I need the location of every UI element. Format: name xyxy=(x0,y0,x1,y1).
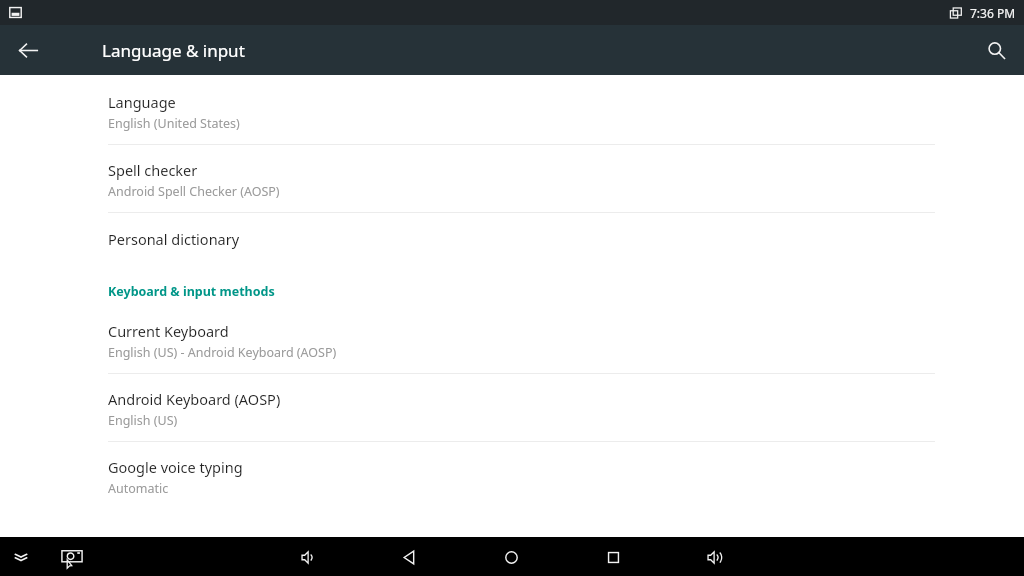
staticText: Language xyxy=(108,92,176,112)
button[interactable]: Volume up xyxy=(697,540,731,574)
button[interactable]: Screenshot xyxy=(56,541,88,573)
staticText: English (US) xyxy=(108,412,178,429)
staticText: Spell checker xyxy=(108,160,198,180)
button[interactable]: Language xyxy=(0,75,1024,144)
staticText: Android Spell Checker (AOSP) xyxy=(108,183,280,200)
staticText: Keyboard & input methods xyxy=(108,283,275,300)
button[interactable]: Home xyxy=(494,540,528,574)
button[interactable]: Current Keyboard xyxy=(0,308,1024,373)
button[interactable]: Recent apps xyxy=(596,540,630,574)
button[interactable]: Back xyxy=(8,30,48,70)
button[interactable]: Google voice typing xyxy=(0,442,1024,509)
button[interactable]: Spell checker xyxy=(0,145,1024,212)
button[interactable]: Back xyxy=(392,540,426,574)
staticText: Personal dictionary xyxy=(108,229,240,249)
staticText: Google voice typing xyxy=(108,457,243,477)
button[interactable]: Personal dictionary xyxy=(0,213,1024,263)
button[interactable]: Hide navigation bar xyxy=(6,542,36,572)
staticText: Language & input xyxy=(102,39,245,62)
staticText: Current Keyboard xyxy=(108,321,229,341)
staticText: 7:36 PM xyxy=(970,5,1016,21)
staticText: Automatic xyxy=(108,480,169,497)
button[interactable]: Volume down xyxy=(291,540,325,574)
staticText: English (US) - Android Keyboard (AOSP) xyxy=(108,344,337,361)
button[interactable]: Search xyxy=(976,30,1016,70)
staticText: Android Keyboard (AOSP) xyxy=(108,389,281,409)
button[interactable]: Android Keyboard (AOSP) xyxy=(0,374,1024,441)
staticText: English (United States) xyxy=(108,115,240,132)
